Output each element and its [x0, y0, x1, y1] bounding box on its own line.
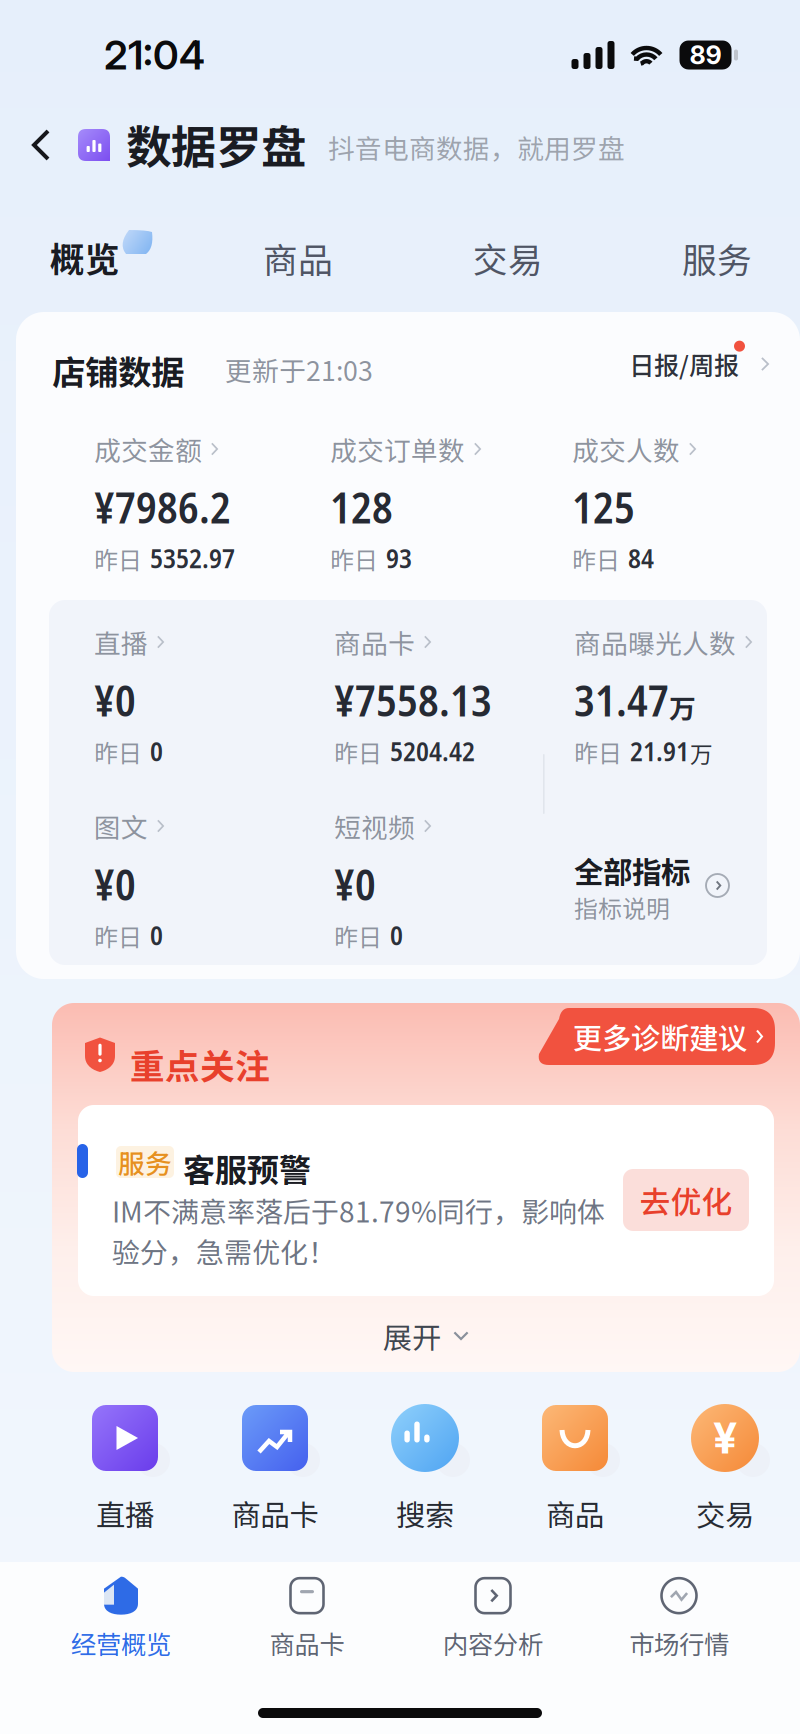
button[interactable]: 成交订单数 — [330, 433, 568, 573]
staticText: 更多诊断建议 — [573, 1015, 747, 1058]
button[interactable]: 直播 — [50, 1390, 200, 1534]
staticText: 昨日 — [334, 918, 382, 953]
staticText: ¥ — [713, 1412, 737, 1464]
button[interactable]: 商品卡 — [214, 1570, 400, 1666]
staticText: 昨日 — [94, 734, 142, 769]
staticText: 全部指标 — [574, 849, 690, 891]
button[interactable]: 搜索 — [350, 1390, 500, 1534]
button[interactable]: 商品卡 — [334, 626, 564, 766]
button[interactable]: ¥ — [650, 1390, 800, 1534]
staticText: 图文 — [94, 807, 148, 845]
staticText: 经营概览 — [71, 1625, 171, 1661]
button[interactable]: 概览 — [50, 228, 170, 288]
staticText: 昨日 — [94, 918, 142, 953]
staticText: 93 — [386, 540, 412, 576]
staticText: 客服预警 — [183, 1145, 311, 1191]
staticText: 日报/周报 — [629, 346, 739, 382]
staticText: 概览 — [50, 232, 120, 282]
button[interactable]: 展开 — [52, 1300, 800, 1372]
button[interactable]: 商品 — [500, 1390, 650, 1534]
staticText: 商品 — [546, 1492, 604, 1534]
staticText: 昨日 — [330, 541, 378, 576]
staticText: 89 — [689, 40, 721, 70]
staticText: 成交订单数 — [330, 430, 465, 468]
staticText: IM不满意率落后于81.79%同行，影响体验分，急需优化！ — [112, 1190, 605, 1271]
staticText: 商品卡 — [231, 1492, 318, 1534]
button[interactable]: 全部指标 — [574, 849, 754, 921]
staticText: 市场行情 — [629, 1625, 729, 1661]
staticText: ¥7558.13 — [334, 671, 492, 729]
staticText: 万 — [669, 687, 696, 726]
button[interactable]: 商品 — [233, 228, 363, 288]
button[interactable]: 图文 — [94, 810, 324, 950]
staticText: ¥7986.2 — [94, 478, 231, 536]
staticText: 展开 — [383, 1315, 441, 1357]
staticText: 店铺数据 — [52, 346, 184, 394]
staticText: 重点关注 — [130, 1039, 270, 1089]
staticText: 直播 — [94, 623, 148, 661]
staticText: 5352.97 — [150, 540, 235, 576]
staticText: 服务 — [682, 233, 752, 283]
staticText: ¥0 — [94, 671, 136, 729]
staticText: 交易 — [696, 1492, 754, 1534]
staticText: 抖音电商数据，就用罗盘 — [328, 128, 625, 166]
staticText: 0 — [150, 733, 163, 769]
staticText: 昨日 — [572, 541, 620, 576]
staticText: ¥0 — [334, 855, 376, 913]
button[interactable]: 服务 — [652, 228, 782, 288]
button[interactable]: 成交金额 — [94, 433, 332, 573]
staticText: 去优化 — [639, 1178, 732, 1222]
staticText: 昨日 — [574, 734, 622, 769]
staticText: 数据罗盘 — [126, 111, 306, 177]
staticText: 商品卡 — [269, 1625, 344, 1661]
button[interactable]: 直播 — [94, 626, 324, 766]
staticText: 昨日 — [334, 734, 382, 769]
button[interactable]: 日报/周报 — [629, 342, 769, 386]
staticText: 更新于21:03 — [225, 350, 373, 389]
staticText: 交易 — [473, 233, 543, 283]
staticText: 服务 — [118, 1143, 172, 1181]
staticText: 商品曝光人数 — [574, 623, 736, 661]
staticText: 成交金额 — [94, 430, 202, 468]
staticText: 5204.42 — [390, 733, 475, 769]
staticText: 搜索 — [396, 1492, 454, 1534]
button[interactable]: 市场行情 — [586, 1570, 772, 1666]
button[interactable]: 交易 — [443, 228, 573, 288]
button[interactable]: 商品曝光人数 — [574, 626, 774, 766]
staticText: 128 — [330, 478, 393, 536]
button[interactable]: 去优化 — [623, 1169, 749, 1231]
staticText: 短视频 — [334, 807, 415, 845]
staticText: ¥0 — [94, 855, 136, 913]
staticText: 商品卡 — [334, 623, 415, 661]
staticText: 昨日 — [94, 541, 142, 576]
button[interactable]: 更多诊断建议 — [537, 1008, 775, 1065]
staticText: 0 — [150, 917, 163, 953]
button[interactable]: 商品卡 — [200, 1390, 350, 1534]
staticText: 指标说明 — [574, 890, 670, 925]
button[interactable]: 返回 — [12, 115, 70, 175]
staticText: 84 — [628, 540, 654, 576]
staticText: 0 — [390, 917, 403, 953]
button[interactable]: 成交人数 — [572, 433, 772, 573]
staticText: 125 — [572, 478, 635, 536]
button[interactable]: 经营概览 — [28, 1570, 214, 1666]
staticText: 31.47 — [574, 671, 669, 729]
button[interactable]: 内容分析 — [400, 1570, 586, 1666]
button[interactable]: 短视频 — [334, 810, 564, 950]
staticText: 21:04 — [104, 31, 205, 79]
staticText: 内容分析 — [443, 1625, 543, 1661]
staticText: 成交人数 — [572, 430, 680, 468]
staticText: 直播 — [96, 1492, 154, 1534]
staticText: 21.91 — [630, 733, 689, 769]
staticText: 商品 — [263, 233, 333, 283]
staticText: 万 — [690, 736, 713, 769]
